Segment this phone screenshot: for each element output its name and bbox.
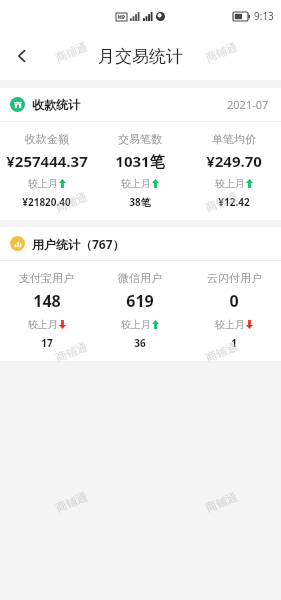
button[interactable]: 微信用户 [93, 271, 187, 350]
staticText: ¥21820.40 [22, 195, 71, 209]
staticText: 月交易统计 [98, 46, 183, 67]
staticText: 0 [229, 290, 239, 312]
button[interactable]: 单笔均价 [187, 132, 281, 209]
staticText: 收款金额 [25, 132, 69, 146]
staticText: 17 [41, 336, 53, 350]
staticText: 商铺通 [54, 189, 89, 215]
button[interactable]: 云闪付用户 [187, 271, 281, 350]
staticText: 收款统计 [32, 97, 80, 112]
staticText: 1031笔 [115, 151, 165, 171]
staticText: 148 [33, 290, 61, 312]
staticText: 较上月 [215, 177, 245, 190]
button[interactable]: Back [0, 34, 44, 78]
staticText: 微信用户 [118, 271, 162, 285]
staticText: 商铺通 [54, 489, 89, 515]
staticText: 较上月 [215, 318, 245, 331]
button[interactable]: 支付宝用户 [0, 271, 93, 350]
staticText: 2021-07 [227, 97, 269, 112]
staticText: 较上月 [28, 177, 58, 190]
staticText: 支付宝用户 [19, 271, 74, 285]
staticText: 商铺通 [204, 489, 239, 515]
button[interactable]: 收款金额 [0, 132, 93, 209]
staticText: ¥12.42 [218, 195, 250, 209]
staticText: 较上月 [121, 318, 151, 331]
staticText: 单笔均价 [212, 132, 256, 146]
staticText: 38笔 [129, 195, 151, 209]
staticText: 商铺通 [204, 39, 239, 65]
staticText: 商铺通 [204, 339, 239, 365]
staticText: ¥257444.37 [6, 151, 88, 171]
staticText: 9:13 [254, 9, 274, 23]
staticText: 较上月 [28, 318, 58, 331]
staticText: 交易笔数 [118, 132, 162, 146]
staticText: 商铺通 [204, 189, 239, 215]
staticText: 商铺通 [54, 39, 89, 65]
staticText: 商铺通 [54, 339, 89, 365]
staticText: 36 [134, 336, 146, 350]
staticText: 619 [126, 290, 154, 312]
staticText: 云闪付用户 [207, 271, 262, 285]
staticText: ¥249.70 [206, 151, 262, 171]
button[interactable]: 交易笔数 [93, 132, 187, 209]
staticText: 1 [231, 336, 237, 350]
staticText: 较上月 [121, 177, 151, 190]
staticText: 用户统计（767） [32, 236, 125, 252]
